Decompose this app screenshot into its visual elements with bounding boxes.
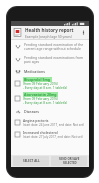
button[interactable]: Expand bbox=[11, 40, 89, 53]
other: Medications bbox=[14, 68, 21, 75]
staticText: Angina pectoris bbox=[23, 118, 49, 123]
other: Diseases bbox=[14, 108, 21, 115]
staticText: - Every day at 8 a.m. 1 tablet(s) bbox=[23, 86, 68, 90]
button[interactable]: Expand bbox=[11, 53, 89, 66]
button[interactable]: Select item bbox=[14, 131, 21, 138]
staticText: SEND OR SAVE bbox=[59, 157, 80, 161]
button[interactable]: More options bbox=[80, 26, 87, 39]
button[interactable]: Select item bbox=[11, 91, 89, 106]
button[interactable]: Select item bbox=[14, 119, 21, 126]
staticText: Bisoprolol 5mg bbox=[24, 77, 51, 82]
staticText: Atorvastatin 20mg bbox=[24, 92, 57, 97]
staticText: (start date: 24 June 2017, end date: Not… bbox=[23, 123, 84, 127]
staticText: Medications bbox=[24, 69, 45, 74]
button[interactable]: Select item bbox=[14, 95, 21, 102]
button[interactable]: Select item bbox=[11, 76, 89, 91]
button[interactable]: SEND OR SAVE bbox=[51, 156, 87, 166]
button[interactable]: Select item bbox=[11, 128, 89, 140]
button[interactable]: Report bbox=[11, 26, 89, 39]
other: Report bbox=[13, 28, 22, 37]
button[interactable]: SELECT ALL bbox=[13, 156, 49, 166]
staticText: SELECTED bbox=[63, 161, 77, 165]
staticText: Pending standard examination of the curr… bbox=[24, 42, 86, 51]
staticText: Increased cholesterol bbox=[23, 130, 58, 135]
button[interactable]: Diseases bbox=[11, 106, 89, 116]
staticText: (from 09 February 2016) bbox=[23, 82, 58, 86]
button[interactable]: Medications bbox=[11, 66, 89, 76]
staticText: (from 09 February 2016) bbox=[23, 97, 58, 101]
other: Expand bbox=[14, 56, 21, 63]
staticText: Diseases bbox=[24, 109, 40, 114]
staticText: SELECT ALL bbox=[23, 159, 40, 163]
staticText: Health history report bbox=[25, 27, 74, 33]
staticText: (start date: 27 July 2017, end date: Not… bbox=[23, 135, 83, 139]
button[interactable]: Select item bbox=[14, 80, 21, 87]
other: Expand bbox=[14, 43, 21, 50]
staticText: - Every day at 8 a.m. 1 tablet(s) bbox=[23, 101, 68, 105]
staticText: Pending standard examinations from past … bbox=[24, 55, 86, 64]
button[interactable]: Select item bbox=[11, 116, 89, 128]
staticText: Example Joseph (age 50 years) bbox=[25, 34, 72, 38]
